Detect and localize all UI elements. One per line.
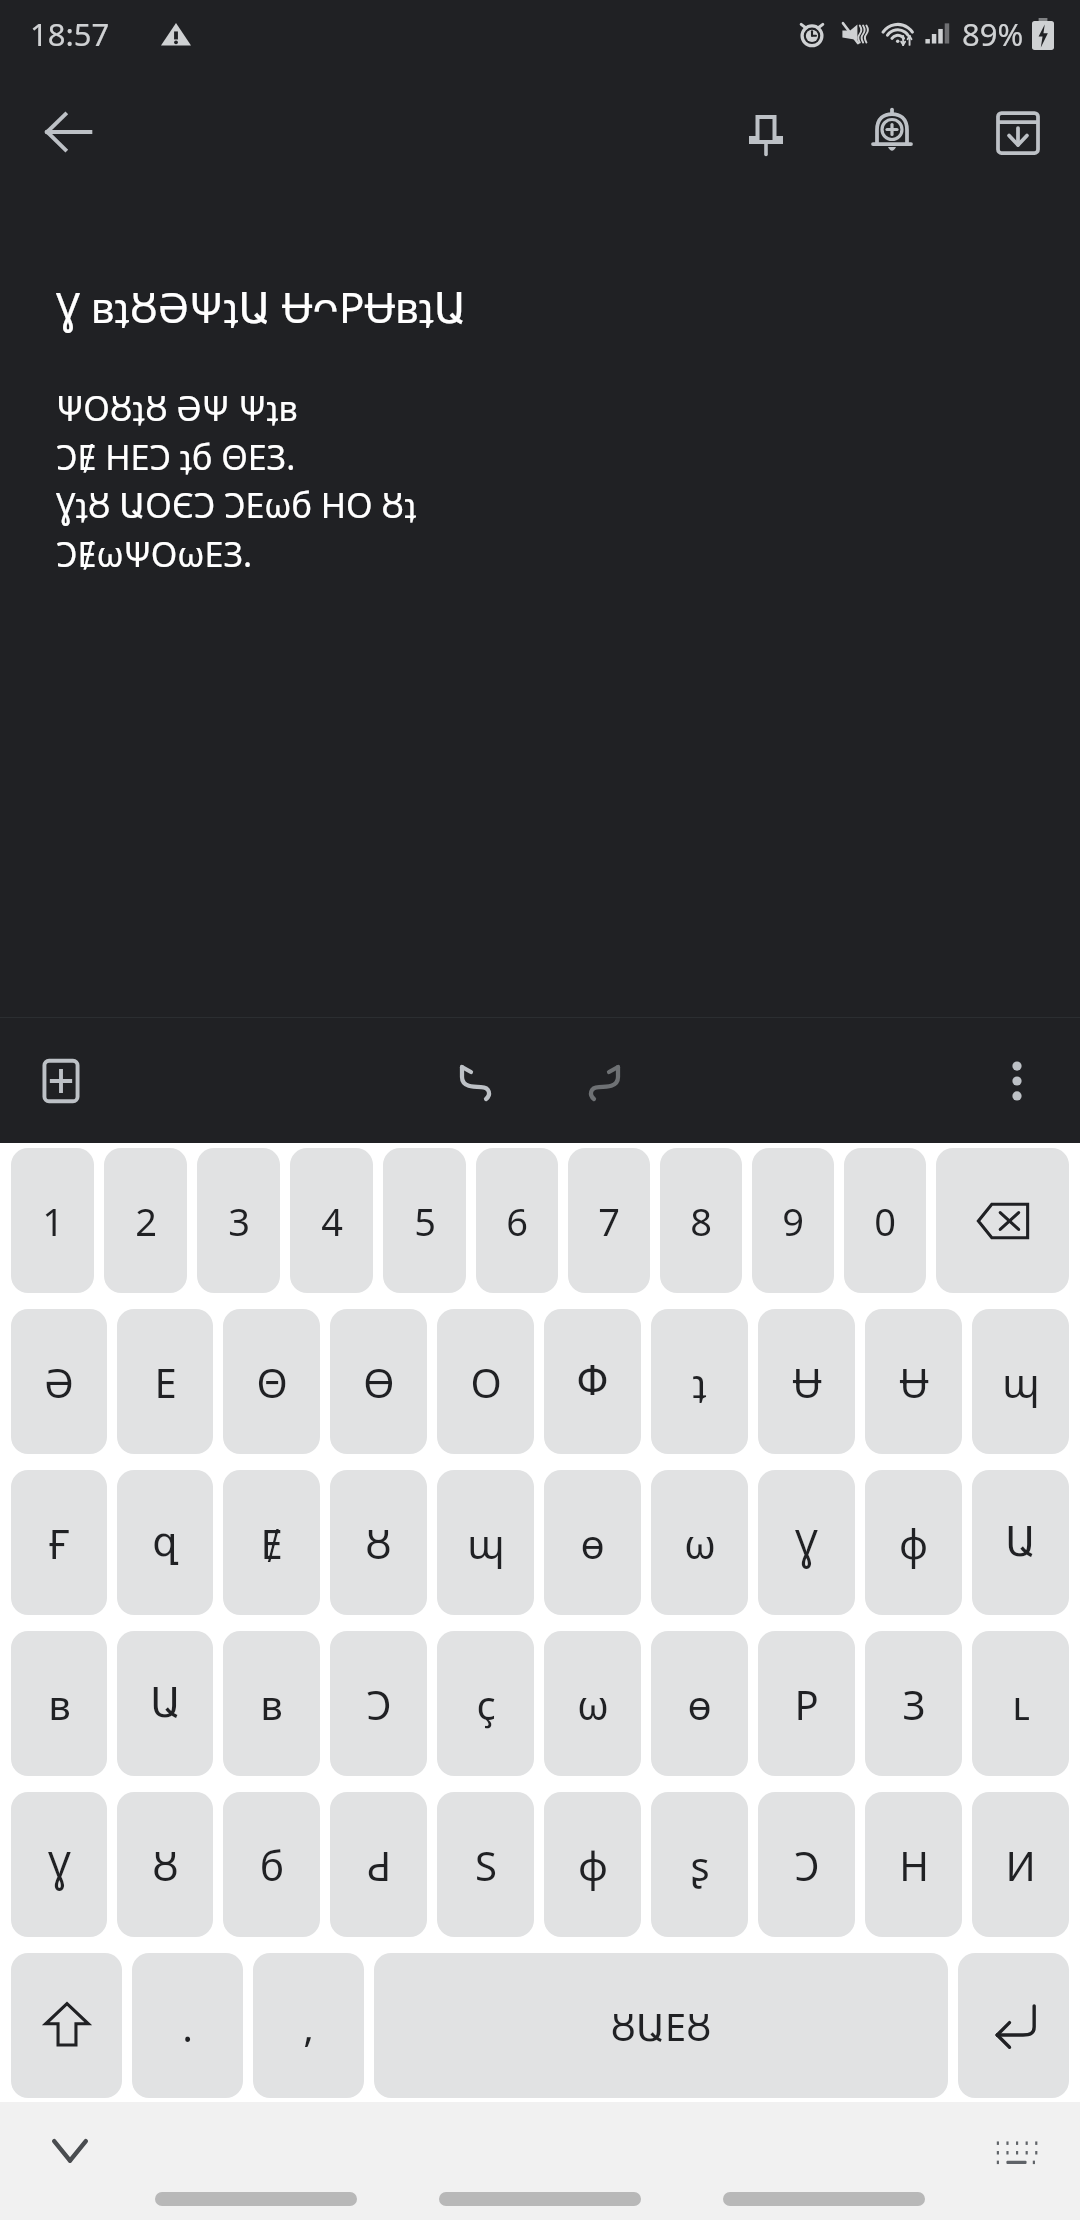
button[interactable]: ѳ	[544, 1470, 641, 1615]
staticText: ΨΟȢʇȢ ƏΨ Ψʇв ƆɆ НΕƆ ʇб ΘΕЗ. ƔʇȢ ԱΟЄƆ ƆΕω…	[56, 385, 417, 577]
button[interactable]: Redo	[561, 1038, 647, 1124]
staticText: 7	[598, 1195, 620, 1247]
button[interactable]: Ɣ вʇȢƏΨʇԱ ɄᴖРɄвʇԱ	[56, 278, 1040, 1017]
button[interactable]: б	[223, 1792, 320, 1937]
staticText: .	[182, 1999, 193, 2053]
staticText: Ա	[1005, 1519, 1036, 1566]
button[interactable]: Ɣ	[11, 1792, 107, 1937]
staticText: 8	[690, 1195, 712, 1247]
button[interactable]: Ա	[972, 1470, 1069, 1615]
button[interactable]: З	[865, 1631, 962, 1776]
button[interactable]: Ɔ	[330, 1631, 427, 1776]
button[interactable]: 5	[383, 1148, 466, 1293]
button[interactable]: Switch keyboard	[978, 2114, 1054, 2190]
staticText: 9	[782, 1195, 804, 1247]
staticText: 1	[42, 1195, 64, 1247]
staticText: ф	[578, 1838, 608, 1892]
button[interactable]: 3	[197, 1148, 280, 1293]
button[interactable]: ʂ	[651, 1792, 748, 1937]
staticText: Ԁ	[366, 1838, 391, 1892]
staticText: ѳ	[687, 1677, 712, 1731]
button[interactable]: Ə	[11, 1309, 107, 1454]
button[interactable]: 1	[11, 1148, 94, 1293]
staticText: Ȣ	[152, 1838, 179, 1892]
button[interactable]: ф	[544, 1792, 641, 1937]
button[interactable]: Ѕ	[437, 1792, 534, 1937]
button[interactable]: Ѳ	[330, 1309, 427, 1454]
button[interactable]: Ε	[117, 1309, 213, 1454]
button[interactable]: И	[972, 1792, 1069, 1937]
staticText: Ғ	[48, 1516, 70, 1570]
staticText: φ	[899, 1516, 928, 1570]
button[interactable]	[439, 2192, 641, 2206]
button[interactable]: ω	[544, 1631, 641, 1776]
button[interactable]	[155, 2192, 357, 2206]
staticText: Θ	[256, 1355, 288, 1409]
staticText: Ѕ	[475, 1838, 497, 1892]
button[interactable]: Enter	[958, 1953, 1069, 2098]
staticText: Ο	[470, 1355, 502, 1409]
button[interactable]: ɰ	[437, 1470, 534, 1615]
button[interactable]: Р	[758, 1631, 855, 1776]
button[interactable]	[723, 2192, 925, 2206]
button[interactable]: ω	[651, 1470, 748, 1615]
staticText: 0	[874, 1195, 896, 1247]
button[interactable]: .	[132, 1953, 243, 2098]
button[interactable]: в	[223, 1631, 320, 1776]
staticText: ,	[303, 1999, 314, 2053]
button[interactable]: Add content	[18, 1038, 104, 1124]
button[interactable]: Add reminder	[844, 84, 940, 180]
staticText: 18:57	[30, 13, 110, 55]
staticText: Н	[899, 1838, 929, 1892]
button[interactable]: Փ	[544, 1309, 641, 1454]
button[interactable]: Ȣ	[117, 1792, 213, 1937]
staticText: Ʉ	[899, 1355, 929, 1409]
button[interactable]: Pin note	[718, 84, 814, 180]
button[interactable]: φ	[865, 1470, 962, 1615]
staticText: ʂ	[690, 1838, 710, 1892]
button[interactable]: 8	[660, 1148, 742, 1293]
button[interactable]: ɰ	[972, 1309, 1069, 1454]
button[interactable]: Ғ	[11, 1470, 107, 1615]
button[interactable]: Archive	[970, 84, 1066, 180]
staticText: ω	[684, 1516, 716, 1570]
button[interactable]: 2	[104, 1148, 187, 1293]
button[interactable]: More options	[974, 1038, 1060, 1124]
button[interactable]: Θ	[223, 1309, 320, 1454]
button[interactable]: զ	[117, 1470, 213, 1615]
button[interactable]: 9	[752, 1148, 834, 1293]
staticText: Փ	[576, 1358, 609, 1405]
button[interactable]: 6	[476, 1148, 558, 1293]
button[interactable]: Ȣ	[330, 1470, 427, 1615]
button[interactable]: ʟ	[972, 1631, 1069, 1776]
button[interactable]: ѳ	[651, 1631, 748, 1776]
staticText: ʟ	[1012, 1677, 1030, 1731]
button[interactable]: Ɣ	[758, 1470, 855, 1615]
button[interactable]: Ʉ	[865, 1309, 962, 1454]
button[interactable]: Ο	[437, 1309, 534, 1454]
staticText: ȢԱΕȢ	[610, 2000, 712, 2052]
button[interactable]: Ɇ	[223, 1470, 320, 1615]
button[interactable]: Н	[865, 1792, 962, 1937]
button[interactable]: ҫ	[437, 1631, 534, 1776]
button[interactable]: ,	[253, 1953, 364, 2098]
button[interactable]: 4	[290, 1148, 373, 1293]
button[interactable]: Hide keyboard	[30, 2110, 110, 2190]
button[interactable]: Ԁ	[330, 1792, 427, 1937]
button[interactable]: Ʉ	[758, 1309, 855, 1454]
button[interactable]: ʇ	[651, 1309, 748, 1454]
button[interactable]: 7	[568, 1148, 650, 1293]
staticText: З	[902, 1677, 926, 1731]
button[interactable]: Ɔ	[758, 1792, 855, 1937]
button[interactable]: 0	[844, 1148, 926, 1293]
button[interactable]: Shift	[11, 1953, 122, 2098]
button[interactable]: ȢԱΕȢ	[374, 1953, 948, 2098]
button[interactable]: Ա	[117, 1631, 213, 1776]
staticText: ʇ	[692, 1355, 707, 1409]
staticText: 3	[228, 1195, 250, 1247]
button[interactable]: Backspace	[936, 1148, 1069, 1293]
button[interactable]: Back	[20, 84, 116, 180]
button[interactable]: Undo	[433, 1038, 519, 1124]
staticText: Ɣ	[795, 1516, 818, 1570]
button[interactable]: в	[11, 1631, 107, 1776]
